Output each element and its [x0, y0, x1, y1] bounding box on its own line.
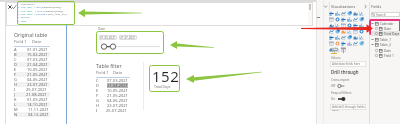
button[interactable]: Visual type 21	[346, 29, 352, 35]
staticText: Search	[376, 13, 386, 17]
button[interactable]: Visual type 26	[340, 35, 346, 41]
staticText: H	[96, 103, 99, 108]
staticText: 25-07-2021	[106, 108, 127, 113]
staticText: max_	[27, 9, 34, 12]
staticText: E	[14, 67, 17, 72]
button[interactable]: Visual type 24	[328, 35, 334, 41]
button[interactable]: Date	[371, 26, 400, 31]
staticText: Keep all filters	[331, 91, 352, 95]
button[interactable]: Visual type 27	[346, 35, 352, 41]
staticText: Field 1	[384, 54, 394, 58]
button[interactable]: Visual type 10	[352, 17, 358, 23]
staticText: 07-03-2021	[27, 57, 48, 62]
button[interactable]: Table_1	[371, 37, 400, 42]
button[interactable]: 31-07-2021	[119, 35, 137, 40]
button[interactable]: Off	[331, 84, 346, 88]
staticText: 01-09-2021	[27, 97, 48, 102]
button[interactable]: Visual type 1	[334, 11, 340, 17]
button[interactable]: Visual type 16	[352, 23, 358, 29]
button[interactable]: 01-03-2021	[99, 35, 117, 40]
button[interactable]: Visual type 38	[340, 47, 346, 53]
button[interactable]: Visual type 34	[352, 41, 358, 47]
staticText: Drill through	[331, 69, 359, 75]
staticText: 15-02-2021	[27, 52, 48, 57]
button[interactable]: Expand fields	[363, 4, 368, 9]
staticText: Field 1	[14, 39, 27, 45]
staticText: 23-07-2021	[107, 103, 128, 108]
button[interactable]: Visual type 15	[346, 23, 352, 29]
staticText: DATEDIFF	[36, 12, 48, 15]
staticText: 31-07-2021	[120, 36, 136, 40]
button[interactable]: Confirm	[11, 4, 17, 10]
button[interactable]: Visual type 5	[358, 11, 364, 17]
button[interactable]: Visual type 33	[346, 41, 352, 47]
button[interactable]: Visual type 17	[358, 23, 364, 29]
staticText: 10-05-2021	[27, 67, 48, 72]
staticText: J	[14, 92, 16, 97]
staticText: days	[21, 19, 27, 22]
button[interactable]: Field 1	[371, 53, 400, 58]
button[interactable]: Collapse visualizations	[323, 4, 328, 9]
button[interactable]: Visual type 6	[328, 17, 334, 23]
button[interactable]: Visual type 23	[358, 29, 364, 35]
button[interactable]: Visual type 31	[334, 41, 340, 47]
staticText: Total Days	[384, 32, 400, 36]
staticText: Date	[98, 27, 106, 31]
button[interactable]: Search	[371, 12, 400, 17]
staticText: Off	[331, 84, 336, 88]
button[interactable]: Visual type 12	[328, 23, 334, 29]
button[interactable]: Visual type 18	[328, 29, 334, 35]
staticText: 07-03-2021	[107, 78, 128, 83]
button[interactable]: Visual type 0	[328, 11, 334, 17]
button[interactable]: Visual type 28	[352, 35, 358, 41]
button[interactable]: Visual type 14	[340, 23, 346, 29]
staticText: MIN	[36, 5, 41, 8]
button[interactable]: Visual type 19	[334, 29, 340, 35]
button[interactable]: Visual type 4	[352, 11, 358, 17]
button[interactable]: Visual type 25	[334, 35, 340, 41]
button[interactable]: Analytics	[340, 47, 347, 54]
button[interactable]: Visual type 36	[328, 47, 334, 53]
button[interactable]: Visual type 3	[346, 11, 352, 17]
staticText: 25-07-2021	[26, 87, 47, 92]
button[interactable]: On	[331, 97, 346, 101]
button[interactable]: Visual type 22	[352, 29, 358, 35]
staticText: M	[14, 107, 18, 112]
button[interactable]: Date	[371, 48, 400, 53]
staticText: Date	[32, 39, 42, 45]
button[interactable]: Cancel	[7, 4, 13, 10]
button[interactable]: Visual type 32	[340, 41, 346, 47]
button[interactable]: Visual type 11	[358, 17, 364, 23]
staticText: Total Days	[154, 84, 171, 89]
button[interactable]: Visual type 35	[358, 41, 364, 47]
staticText: C	[96, 78, 99, 83]
button[interactable]: Visual type 37	[334, 47, 340, 53]
button[interactable]: Visual type 13	[334, 23, 340, 29]
staticText: ('Calendar'[Date])	[41, 5, 62, 8]
button[interactable]: Visual type 9	[346, 17, 352, 23]
staticText: =	[34, 9, 37, 12]
button[interactable]: Add data fields here	[330, 61, 366, 67]
staticText: Fields	[371, 4, 382, 9]
button[interactable]: Add drill-through fields here	[330, 104, 366, 110]
staticText: Calendar	[380, 22, 394, 26]
staticText: I	[96, 108, 98, 113]
button[interactable]: Visual type 2	[340, 11, 346, 17]
button[interactable]: Visual type 30	[328, 41, 334, 47]
button[interactable]: Visual type 20	[340, 29, 346, 35]
button[interactable]: Calendar	[371, 21, 400, 26]
button[interactable]: Format	[331, 47, 338, 54]
button[interactable]: Table_2	[371, 42, 400, 47]
button[interactable]: Visual type 29	[358, 35, 364, 41]
button[interactable]: Total Days	[371, 31, 400, 36]
staticText: 14-10-2021	[27, 102, 48, 107]
staticText: Cross-report	[331, 78, 350, 82]
button[interactable]: Visual type 8	[340, 17, 346, 23]
staticText: 152	[152, 66, 180, 86]
staticText: Date	[384, 49, 392, 53]
button[interactable]: Visual type 7	[334, 17, 340, 23]
button[interactable]: 152	[149, 65, 180, 92]
